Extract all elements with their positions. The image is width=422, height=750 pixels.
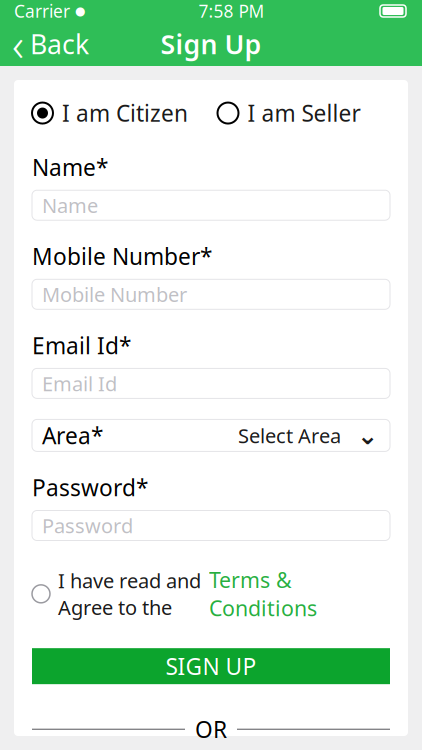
staticText: 7:58 PM (198, 0, 264, 22)
staticText: Email Id* (32, 330, 131, 360)
staticText: Sign Up (160, 26, 261, 62)
staticText: Password (42, 512, 133, 539)
button[interactable]: I am Seller (217, 94, 360, 132)
staticText: Mobile Number (42, 281, 187, 308)
button[interactable]: SIGN UP (32, 648, 390, 684)
staticText: ● (75, 4, 85, 18)
staticText: Select Area (238, 422, 341, 449)
button[interactable]: I am Citizen (32, 94, 188, 132)
staticText: Password* (32, 472, 148, 502)
button[interactable]: ‹ (0, 22, 101, 66)
button[interactable]: Area* (32, 419, 390, 451)
staticText: Carrier (14, 0, 70, 22)
button[interactable]: I have read and Agree to the (32, 561, 390, 626)
staticText: Mobile Number* (32, 241, 212, 271)
staticText: Terms & Conditions (209, 565, 317, 622)
staticText: I have read and Agree to the (58, 567, 201, 620)
staticText: Email Id (42, 370, 117, 397)
staticText: ⌄ (357, 421, 378, 450)
staticText: Name (42, 192, 98, 218)
staticText: Name* (32, 152, 108, 182)
staticText: Back (30, 26, 89, 62)
staticText: Area* (42, 420, 103, 450)
staticText: OR (195, 714, 227, 744)
staticText: I am Seller (247, 98, 360, 128)
staticText: ‹ (12, 14, 24, 74)
staticText: SIGN UP (165, 651, 256, 681)
staticText: I am Citizen (62, 98, 188, 128)
